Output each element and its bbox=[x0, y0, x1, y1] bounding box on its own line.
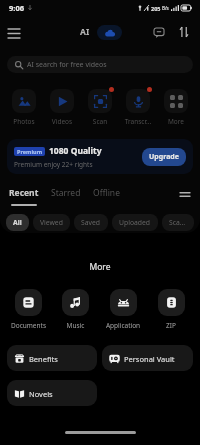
button[interactable]: Documents bbox=[5, 289, 52, 330]
staticText: Personal Vault bbox=[124, 354, 175, 364]
button[interactable]: Offline bbox=[93, 187, 120, 199]
staticText: 205 bbox=[151, 5, 161, 12]
staticText: B/s bbox=[162, 5, 169, 11]
staticText: 9:06 bbox=[9, 3, 24, 13]
button[interactable]: Starred bbox=[51, 187, 81, 199]
button[interactable]: Transfer bbox=[173, 21, 195, 43]
button[interactable]: Transcr... bbox=[119, 89, 157, 126]
button[interactable]: All bbox=[6, 214, 29, 231]
staticText: Upgrade bbox=[149, 152, 179, 162]
staticText: 1080 Quality bbox=[49, 145, 102, 157]
staticText: Scan bbox=[81, 117, 119, 126]
staticText: Novels bbox=[29, 389, 53, 399]
button[interactable]: Messages bbox=[148, 21, 170, 43]
button[interactable]: Videos bbox=[43, 89, 81, 126]
staticText: Starred bbox=[51, 187, 81, 199]
button[interactable]: Viewed bbox=[33, 214, 70, 231]
staticText: AI bbox=[80, 26, 90, 38]
button[interactable]: Benefits bbox=[7, 345, 97, 371]
staticText: All bbox=[13, 218, 22, 227]
staticText: AI search for free videos bbox=[27, 60, 107, 70]
button[interactable]: Application bbox=[99, 289, 147, 330]
staticText: More bbox=[0, 261, 200, 273]
button[interactable]: Upgrade bbox=[142, 148, 186, 166]
staticText: Documents bbox=[5, 321, 52, 330]
staticText: Videos bbox=[43, 117, 81, 126]
button[interactable]: Personal Vault bbox=[102, 345, 193, 371]
button[interactable]: AI bbox=[77, 23, 93, 41]
button[interactable]: Recent bbox=[9, 187, 39, 206]
staticText: Photos bbox=[5, 117, 43, 126]
button[interactable]: Music bbox=[52, 289, 99, 330]
button[interactable]: Uploaded bbox=[112, 214, 158, 231]
button[interactable]: Saved bbox=[74, 214, 108, 231]
button[interactable]: Menu bbox=[2, 20, 26, 44]
staticText: Application bbox=[99, 321, 147, 330]
button[interactable]: Photos bbox=[5, 89, 43, 126]
button[interactable]: Scan bbox=[81, 89, 119, 126]
staticText: Offline bbox=[93, 187, 120, 199]
staticText: Recent bbox=[9, 187, 39, 199]
staticText: Premium bbox=[17, 148, 42, 155]
button[interactable]: Sort bbox=[178, 187, 192, 201]
staticText: Uploaded bbox=[119, 218, 151, 227]
button[interactable]: AI search for free videos bbox=[7, 56, 193, 73]
button[interactable]: More bbox=[157, 89, 195, 126]
staticText: Saved bbox=[81, 218, 101, 227]
button[interactable]: Scanned bbox=[162, 214, 194, 231]
staticText: Scanned bbox=[169, 218, 187, 227]
staticText: Premium enjoy 22+ rights bbox=[14, 160, 93, 169]
staticText: Music bbox=[52, 321, 99, 330]
staticText: ZIP bbox=[147, 321, 195, 330]
staticText: Transcr... bbox=[119, 117, 157, 126]
button[interactable]: Cloud bbox=[97, 25, 122, 40]
button[interactable]: Novels bbox=[7, 380, 97, 406]
button[interactable]: Premium bbox=[7, 139, 193, 174]
button[interactable]: ZIP bbox=[147, 289, 195, 330]
staticText: Viewed bbox=[40, 218, 63, 227]
staticText: More bbox=[157, 117, 195, 126]
staticText: Benefits bbox=[29, 354, 58, 364]
